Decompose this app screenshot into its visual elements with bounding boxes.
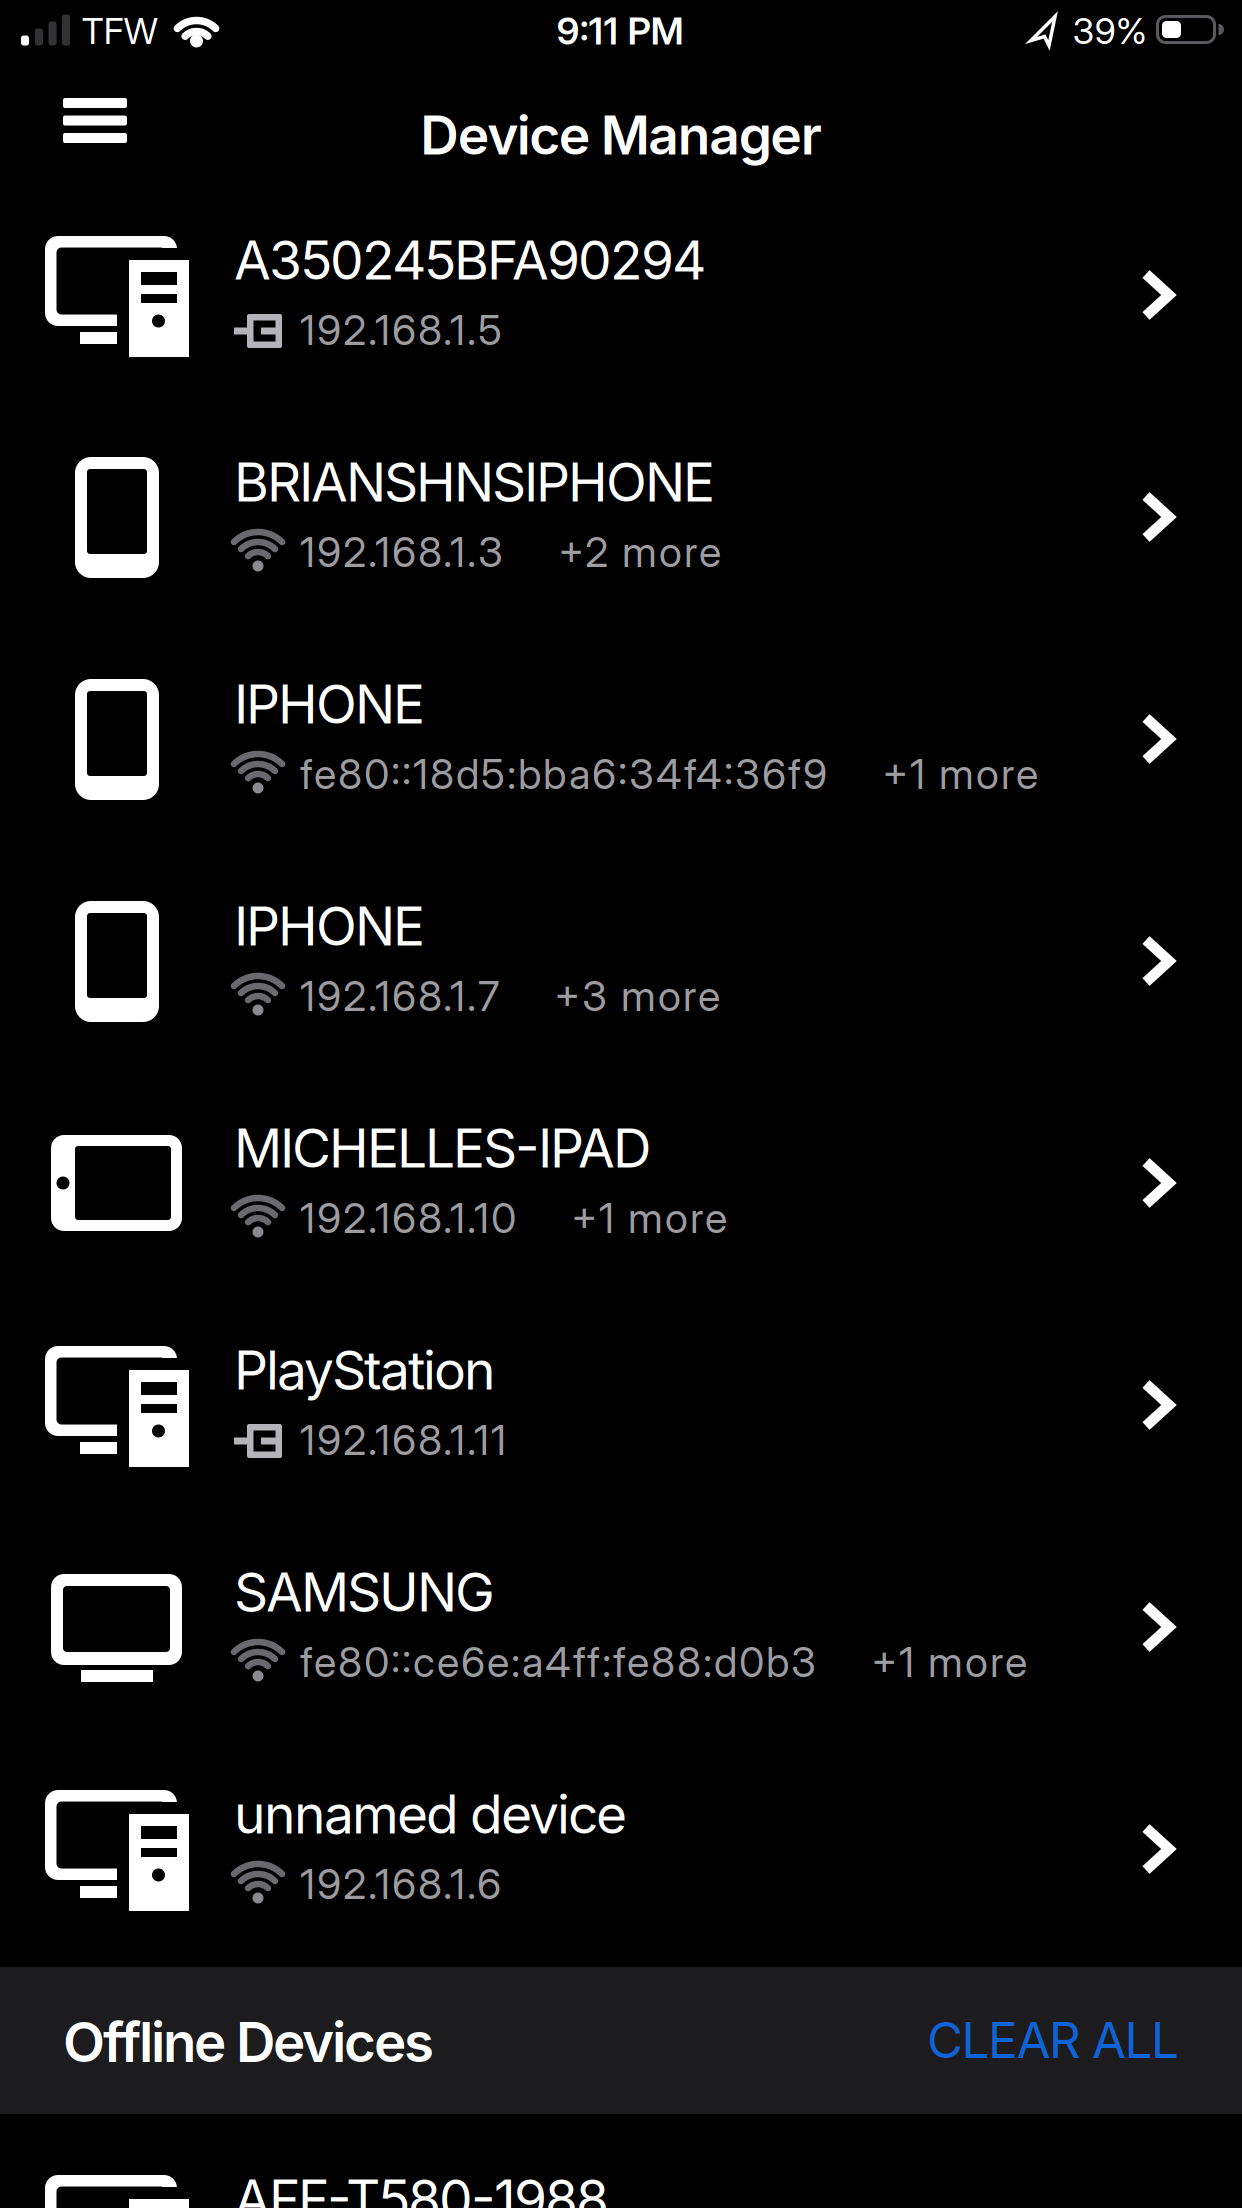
button[interactable]: unnamed device [0,1738,1242,1960]
staticText: PlayStation [234,1338,496,1401]
button[interactable]: MICHELLES-IPAD [0,1072,1242,1294]
button[interactable]: Menu [63,98,127,143]
button[interactable]: BRIANSHNSIPHONE [0,406,1242,628]
staticText: fe80::ce6e:a4ff:fe88:d0b3 [300,1638,816,1686]
staticText: A350245BFA90294 [234,228,706,291]
staticText: +1 more [882,750,1038,798]
button[interactable]: IPHONE [0,628,1242,850]
staticText: TFW [81,10,158,52]
staticText: IPHONE [234,894,425,957]
staticText: 192.168.1.6 [300,1860,501,1908]
button[interactable]: SAMSUNG [0,1516,1242,1738]
staticText: IPHONE [234,672,425,735]
staticText: +1 more [571,1194,727,1242]
staticText: +2 more [558,528,721,576]
staticText: fe80::18d5:bba6:34f4:36f9 [300,750,827,798]
staticText: CLEAR ALL [927,2011,1179,2069]
button[interactable]: CLEAR ALL [679,2011,1179,2069]
staticText: Offline Devices [63,2010,434,2074]
staticText: MICHELLES-IPAD [234,1116,651,1179]
button[interactable]: A350245BFA90294 [0,184,1242,406]
staticText: 192.168.1.3 [300,528,503,576]
staticText: +1 more [871,1638,1027,1686]
staticText: 192.168.1.7 [300,972,499,1020]
staticText: BRIANSHNSIPHONE [234,450,715,513]
staticText: SAMSUNG [234,1560,495,1623]
staticText: 9:11 PM [556,9,683,53]
staticText: 39% [1072,10,1147,52]
staticText: unnamed device [234,1782,627,1845]
button[interactable]: AFF-T580-1988 [0,2123,1242,2208]
button[interactable]: IPHONE [0,850,1242,1072]
staticText: 192.168.1.10 [300,1194,516,1242]
staticText: Device Manager [420,103,822,166]
button[interactable]: PlayStation [0,1294,1242,1516]
staticText: +3 more [554,972,720,1020]
staticText: 192.168.1.11 [300,1416,506,1464]
staticText: AFF-T580-1988 [234,2167,609,2208]
staticText: 192.168.1.5 [300,306,502,354]
